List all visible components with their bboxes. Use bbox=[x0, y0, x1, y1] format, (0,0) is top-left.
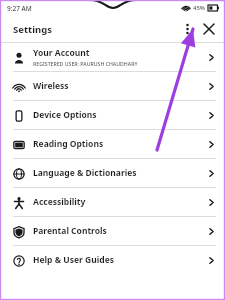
staticText: Device Options bbox=[33, 109, 97, 121]
staticText: Your Account bbox=[33, 47, 90, 59]
staticText: Accessibility bbox=[33, 196, 86, 208]
button[interactable]: More options bbox=[177, 19, 197, 39]
button[interactable]: Device Options bbox=[0, 101, 225, 129]
staticText: 45% bbox=[193, 4, 205, 12]
staticText: Help & User Guides bbox=[33, 254, 114, 266]
staticText: Settings bbox=[13, 23, 52, 36]
button[interactable]: Your Account bbox=[0, 43, 225, 71]
button[interactable]: Reading Options bbox=[0, 130, 225, 158]
button[interactable]: Accessibility bbox=[0, 188, 225, 216]
button[interactable]: Language & Dictionaries bbox=[0, 159, 225, 187]
staticText: 9:27 AM bbox=[7, 4, 32, 13]
button[interactable]: Help & User Guides bbox=[0, 246, 225, 274]
button[interactable]: Wireless bbox=[0, 72, 225, 100]
staticText: Parental Controls bbox=[33, 225, 107, 237]
staticText: Wireless bbox=[33, 80, 69, 92]
staticText: REGISTERED USER: PAURUSH CHAUDHARY bbox=[33, 60, 138, 67]
staticText: Reading Options bbox=[33, 138, 104, 150]
button[interactable]: Parental Controls bbox=[0, 217, 225, 245]
staticText: Language & Dictionaries bbox=[33, 167, 137, 179]
button[interactable]: Close bbox=[197, 17, 221, 41]
